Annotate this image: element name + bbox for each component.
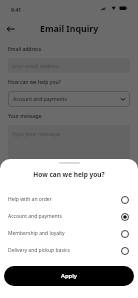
button[interactable]: Delivery and pickup basics bbox=[0, 242, 138, 259]
staticText: Help with an order bbox=[8, 196, 52, 203]
staticText: How can we help you? bbox=[0, 170, 138, 179]
staticText: Email address bbox=[8, 46, 42, 53]
staticText: Membership and loyalty bbox=[8, 230, 65, 237]
staticText: Type your message bbox=[12, 130, 61, 137]
staticText: Email Inquiry bbox=[40, 23, 99, 35]
button[interactable]: Account and payments bbox=[0, 208, 138, 225]
staticText: 9:41 bbox=[11, 6, 22, 13]
button[interactable]: Account and payments bbox=[8, 91, 130, 107]
button[interactable]: Membership and loyalty bbox=[0, 225, 138, 242]
staticText: Delivery and pickup basics bbox=[8, 247, 70, 254]
staticText: Account and payments bbox=[8, 213, 62, 220]
staticText: your email address bbox=[12, 62, 60, 69]
button[interactable]: Apply bbox=[4, 266, 134, 286]
button[interactable]: Back bbox=[2, 20, 20, 38]
staticText: How can we help you? bbox=[8, 79, 61, 86]
staticText: Account and payments bbox=[13, 96, 67, 103]
button[interactable]: Help with an order bbox=[0, 191, 138, 208]
staticText: Your message bbox=[8, 113, 42, 120]
staticText: Apply bbox=[61, 272, 77, 280]
